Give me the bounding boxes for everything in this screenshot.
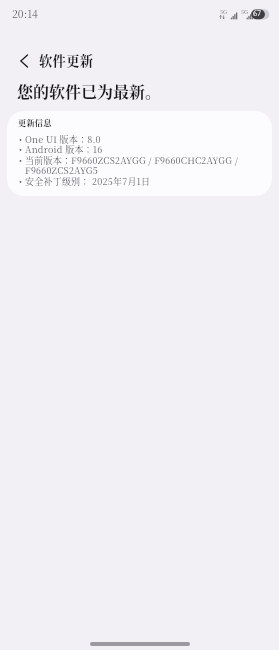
staticText: 5G bbox=[220, 10, 227, 16]
staticText: 更新信息 bbox=[18, 118, 52, 128]
staticText: • bbox=[19, 156, 23, 166]
staticText: • bbox=[19, 145, 23, 155]
staticText: 您的软件已为最新。 bbox=[17, 84, 162, 102]
button[interactable]: 更新信息 bbox=[7, 111, 272, 196]
staticText: • bbox=[19, 177, 23, 187]
staticText: Android 版本：16 bbox=[25, 145, 103, 155]
staticText: 安全补丁级别： 2025年7月1日 bbox=[25, 177, 151, 187]
staticText: 67 bbox=[253, 10, 262, 18]
staticText: One UI 版本：8.0 bbox=[25, 135, 101, 145]
staticText: 当前版本：F9660ZCS2AYGG / F9660CHC2AYGG / bbox=[25, 156, 239, 166]
staticText: 软件更新 bbox=[39, 53, 94, 69]
staticText: 5G bbox=[241, 10, 248, 16]
staticText: 20:14 bbox=[12, 8, 38, 21]
button[interactable]: Back bbox=[0, 44, 41, 78]
staticText: F9660ZCS2AYG5 bbox=[25, 166, 98, 176]
staticText: • bbox=[19, 135, 23, 145]
